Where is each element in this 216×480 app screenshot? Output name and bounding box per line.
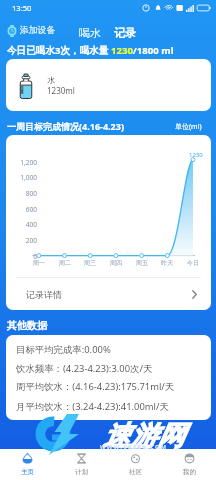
staticText: 其他数据 xyxy=(7,319,47,332)
staticText: 水 xyxy=(47,75,55,85)
staticText: 周三 xyxy=(79,259,101,267)
button[interactable]: 计划 xyxy=(54,449,108,480)
staticText: 目标平均完成率:0.00% xyxy=(16,343,111,356)
staticText: 今日 xyxy=(182,259,204,267)
button[interactable]: Add device xyxy=(7,23,56,38)
staticText: 1,000 xyxy=(12,173,37,182)
staticText: 我的 xyxy=(183,468,196,476)
staticText: 13:50 xyxy=(12,3,32,13)
button[interactable]: 记录详情 xyxy=(6,278,211,310)
staticText: 600 xyxy=(12,205,37,214)
staticText: 1,200 xyxy=(12,158,37,167)
staticText: 周五 xyxy=(131,259,153,267)
staticText: 记录详情 xyxy=(26,289,62,300)
staticText: 添加设备 xyxy=(20,25,56,36)
other: Add device xyxy=(7,25,17,37)
other: Open details xyxy=(192,290,197,299)
staticText: 周平均饮水：(4.16-4.23):175.71ml/天 xyxy=(16,380,175,393)
staticText: 一周目标完成情况(4.16-4.23) xyxy=(7,120,124,132)
staticText: 单位(ml) xyxy=(175,122,202,132)
button[interactable]: 记录 xyxy=(114,26,136,40)
staticText: 200 xyxy=(12,236,37,245)
button[interactable]: 我的 xyxy=(162,449,216,480)
staticText: 1230ml xyxy=(47,85,75,96)
staticText: 昨天 xyxy=(156,259,178,267)
button[interactable]: 主页 xyxy=(0,449,54,480)
staticText: 周一 xyxy=(28,259,50,267)
staticText: 社区 xyxy=(129,468,142,476)
staticText: 速游网 xyxy=(103,419,184,453)
staticText: 饮水频率：(4.23-4.23):3.00次/天 xyxy=(16,362,153,375)
staticText: 主页 xyxy=(21,468,34,476)
staticText: 周四 xyxy=(105,259,127,267)
staticText: 周二 xyxy=(54,259,76,267)
staticText: 月平均饮水：(3.24-4.23):41.00ml/天 xyxy=(16,400,169,413)
staticText: W W W . 9 8 8 8 0 . C O M xyxy=(100,443,167,451)
button[interactable]: 喝水 xyxy=(79,26,101,40)
staticText: 800 xyxy=(12,189,37,198)
staticText: 计划 xyxy=(75,468,88,476)
button[interactable]: 水 xyxy=(6,59,211,111)
button[interactable]: 社区 xyxy=(108,449,162,480)
staticText: 0 xyxy=(12,252,37,261)
staticText: 今日已喝水3次，喝水量 1230/1800 ml xyxy=(7,44,174,57)
staticText: 1230 xyxy=(189,151,203,159)
staticText: 400 xyxy=(12,220,37,229)
